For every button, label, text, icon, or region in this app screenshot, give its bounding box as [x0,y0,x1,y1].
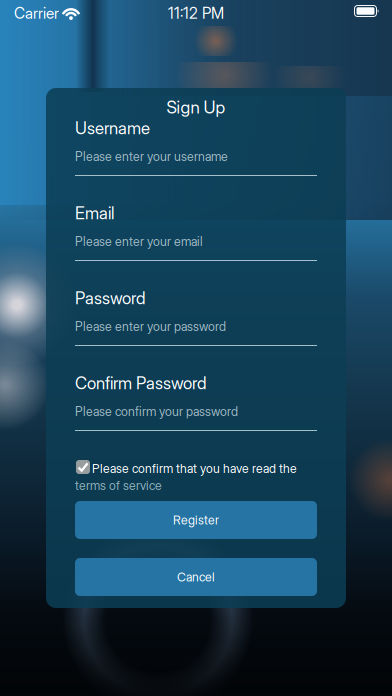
button[interactable]: Please confirm that you have read the [75,459,317,491]
staticText: Please confirm that you have read the [92,461,297,476]
staticText: Email [75,203,114,223]
staticText: Password [75,288,145,308]
staticText: Carrier [14,4,59,23]
staticText: Please confirm your password [75,404,238,419]
staticText: Please enter your password [75,319,226,334]
staticText: Sign Up [166,97,225,118]
staticText: Cancel [177,570,215,584]
staticText: Please enter your username [75,149,228,164]
staticText: Please enter your email [75,234,203,249]
button[interactable]: Register [75,501,317,539]
button[interactable]: Cancel [75,558,317,596]
staticText: Confirm Password [75,373,206,393]
staticText: Register [173,513,219,527]
staticText: terms of service [75,478,162,493]
staticText: Username [75,118,150,138]
staticText: 11:12 PM [168,4,224,23]
